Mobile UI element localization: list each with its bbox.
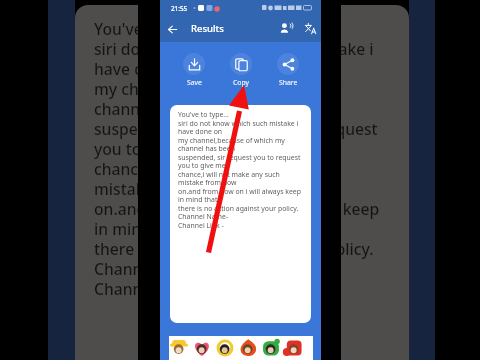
staticText: there is no action against your policy. bbox=[178, 204, 299, 213]
staticText: channel has been bbox=[178, 144, 235, 153]
button[interactable]: Sticker bbox=[192, 336, 212, 360]
staticText: in mind that bbox=[94, 218, 186, 239]
staticText: Channel Name- bbox=[94, 258, 210, 279]
staticText: suspended, sir request you to request bbox=[94, 118, 378, 139]
button[interactable]: Sticker bbox=[215, 336, 235, 360]
staticText: chance,i will not make any such bbox=[178, 170, 280, 179]
staticText: on.and from now on i will always keep bbox=[178, 187, 301, 196]
staticText: channel has been bbox=[94, 98, 226, 119]
staticText: chance,i will not make any such bbox=[94, 158, 331, 179]
staticText: 21:55 bbox=[171, 4, 188, 13]
staticText: Channel Name- bbox=[178, 212, 229, 221]
button[interactable]: Sticker bbox=[284, 336, 304, 360]
staticText: have done on bbox=[94, 58, 196, 79]
staticText: you to give me bbox=[94, 138, 205, 159]
button[interactable]: Sticker bbox=[238, 336, 258, 360]
staticText: Copy bbox=[233, 78, 249, 87]
staticText: Channel Link - bbox=[94, 278, 201, 299]
staticText: suspended, sir request you to request bbox=[178, 153, 301, 162]
staticText: You've to type... bbox=[178, 110, 229, 119]
button[interactable]: Save bbox=[176, 53, 212, 87]
staticText: my channel,because of which my bbox=[94, 78, 342, 99]
staticText: siri do not know which such mistake i bbox=[94, 38, 374, 59]
staticText: Share bbox=[279, 78, 298, 87]
button[interactable]: Copy bbox=[223, 53, 259, 87]
button[interactable]: Translate bbox=[301, 19, 320, 38]
button[interactable]: Sticker bbox=[169, 336, 189, 360]
button[interactable]: Sticker bbox=[261, 336, 281, 360]
button[interactable]: Share bbox=[270, 53, 306, 87]
button[interactable]: Record voice bbox=[277, 19, 296, 38]
staticText: on.and from now on i will always keep bbox=[94, 198, 380, 219]
staticText: Save bbox=[187, 78, 202, 87]
staticText: mistake from now bbox=[178, 178, 237, 187]
staticText: have done on bbox=[178, 127, 223, 136]
staticText: there is no action against your policy. bbox=[94, 238, 374, 259]
staticText: siri do not know which such mistake i bbox=[178, 119, 299, 128]
staticText: my channel,because of which my bbox=[178, 136, 285, 145]
button[interactable]: Back bbox=[163, 20, 181, 38]
staticText: Channel Link - bbox=[178, 221, 224, 230]
staticText: Results bbox=[191, 22, 224, 35]
staticText: mistake from now bbox=[94, 178, 230, 199]
staticText: you to give me bbox=[178, 161, 226, 170]
staticText: in mind that bbox=[178, 195, 218, 204]
staticText: You've to type... bbox=[94, 18, 213, 39]
